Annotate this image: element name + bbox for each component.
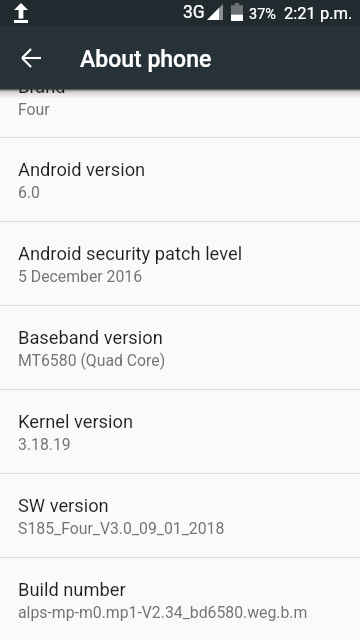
- staticText: Android version: [18, 159, 348, 180]
- staticText: S185_Four_V3.0_09_01_2018: [18, 519, 348, 538]
- staticText: alps-mp-m0.mp1-V2.34_bd6580.weg.b.m: [18, 603, 348, 622]
- staticText: Android security patch level: [18, 243, 348, 264]
- button[interactable]: Kernel version: [0, 390, 360, 473]
- staticText: 37%: [249, 6, 276, 23]
- staticText: Four: [18, 100, 348, 119]
- button[interactable]: Android security patch level: [0, 222, 360, 305]
- staticText: About phone: [80, 46, 212, 73]
- staticText: SW version: [18, 495, 348, 516]
- staticText: 6.0: [18, 183, 348, 202]
- button[interactable]: Baseband version: [0, 306, 360, 389]
- button[interactable]: Build number: [0, 558, 360, 640]
- staticText: Kernel version: [18, 411, 348, 432]
- button[interactable]: SW version: [0, 474, 360, 557]
- staticText: MT6580 (Quad Core): [18, 351, 348, 370]
- staticText: Brand: [18, 76, 348, 97]
- staticText: 5 December 2016: [18, 267, 348, 286]
- button[interactable]: Brand: [0, 55, 360, 137]
- staticText: 3.18.19: [18, 435, 348, 454]
- button[interactable]: Navigate up: [7, 34, 55, 82]
- staticText: 3G: [183, 2, 205, 23]
- staticText: 2:21 p.m.: [284, 4, 353, 23]
- button[interactable]: Android version: [0, 138, 360, 221]
- staticText: Build number: [18, 579, 348, 600]
- staticText: Baseband version: [18, 327, 348, 348]
